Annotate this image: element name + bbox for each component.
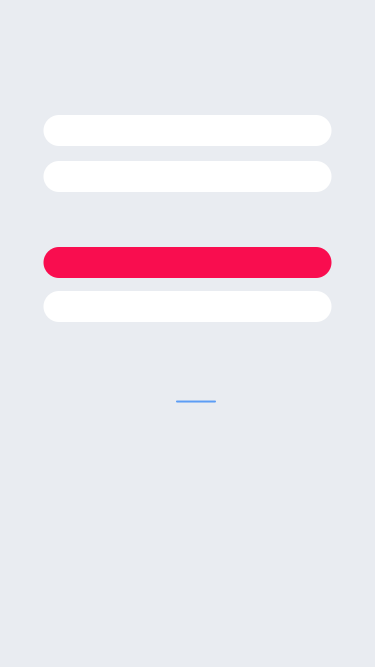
button[interactable]: Create account	[43, 291, 331, 322]
button[interactable]: Sign in	[43, 247, 331, 278]
button[interactable]: Forgot your password?	[160, 393, 232, 409]
button[interactable]: Password	[43, 161, 331, 192]
button[interactable]: Email address	[43, 115, 331, 146]
